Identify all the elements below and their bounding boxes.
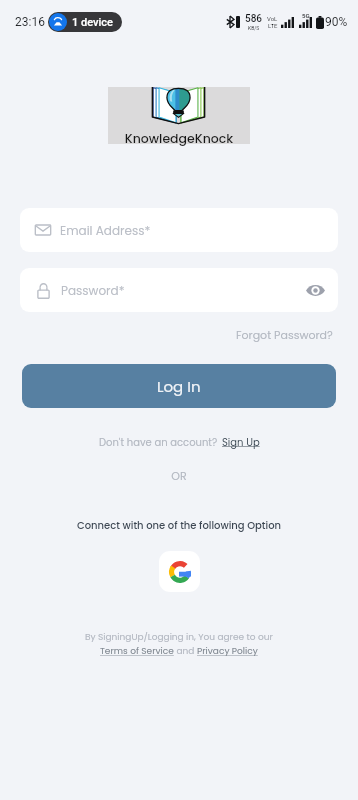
staticText: 90% [325,15,348,29]
staticText: 586 [245,13,263,25]
staticText: KB/S [248,25,260,31]
staticText: 5G [302,12,310,19]
staticText: KnowledgeKnock [108,130,250,147]
button[interactable]: Sign Up [222,435,260,449]
button[interactable]: Email Address* [20,208,338,252]
button[interactable]: Terms of Service [100,645,174,658]
staticText: OR [0,468,358,483]
staticText: Sign Up [222,435,260,449]
staticText: LTE [268,22,278,29]
button[interactable]: Show password [304,279,326,301]
staticText: Terms of Service [100,645,174,658]
staticText: Forgot Password? [236,327,333,342]
staticText: and [174,645,197,658]
staticText: Password* [61,282,125,299]
staticText: Privacy Policy [197,645,258,658]
staticText: 23:16 [15,15,45,29]
button[interactable]: Privacy Policy [197,645,258,658]
staticText: By SigningUp/Logging in, You agree to ou… [85,631,273,644]
staticText: Log In [157,376,201,397]
button[interactable]: Log In [22,364,336,408]
staticText: Email Address* [60,222,151,239]
button[interactable]: Sign in with Google [159,551,200,592]
button[interactable]: Forgot Password? [232,325,337,344]
button[interactable]: Password* [20,268,338,312]
staticText: Don't have an account? [99,435,218,449]
staticText: VoL [267,15,278,22]
staticText: 1 device [72,16,113,29]
staticText: Connect with one of the following Option [0,518,358,532]
